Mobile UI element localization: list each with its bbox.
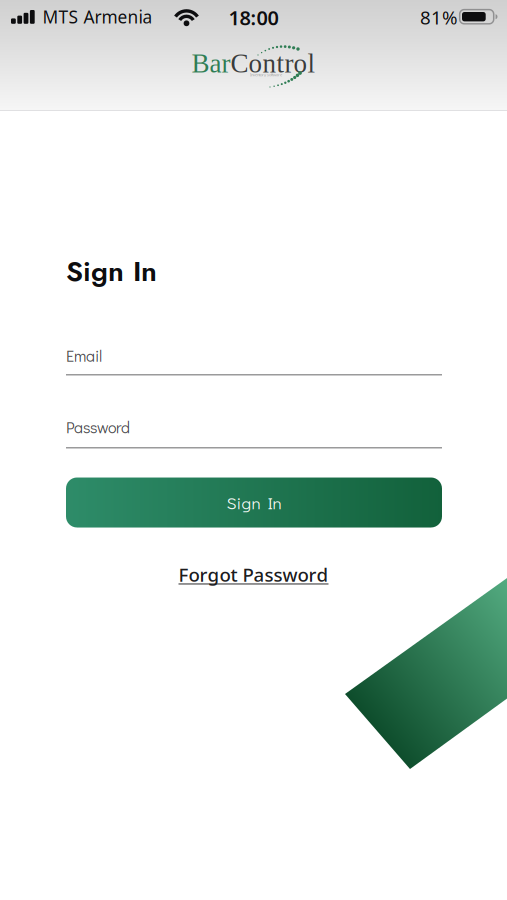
button[interactable]: Password bbox=[66, 416, 442, 448]
staticText: MTS Armenia bbox=[42, 5, 152, 28]
staticText: 18:00 bbox=[228, 4, 278, 31]
staticText: Control bbox=[230, 48, 315, 78]
button[interactable]: Forgot Password bbox=[178, 562, 328, 587]
button[interactable]: Email bbox=[66, 345, 442, 375]
staticText: Sign In bbox=[66, 250, 157, 291]
staticText: Forgot Password bbox=[178, 562, 328, 587]
staticText: 81% bbox=[420, 5, 458, 30]
staticText: Sign In bbox=[226, 491, 281, 514]
staticText: Inventory software bbox=[250, 72, 282, 77]
staticText: Password bbox=[66, 416, 130, 437]
button[interactable]: Sign In bbox=[66, 477, 442, 527]
staticText: Bar bbox=[191, 48, 230, 78]
staticText: Email bbox=[66, 345, 102, 366]
